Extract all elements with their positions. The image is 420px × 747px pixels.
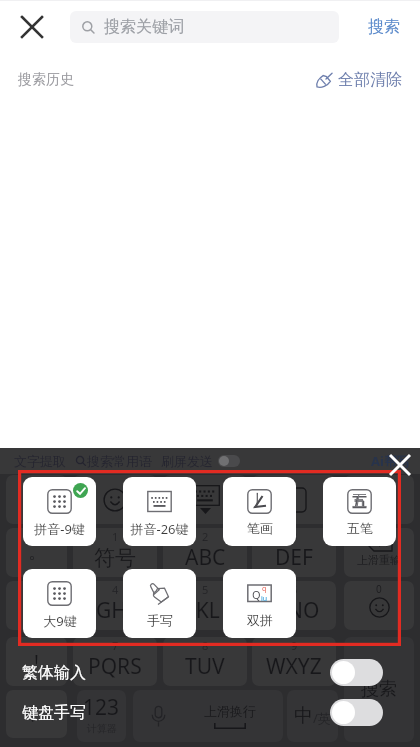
staticText: 搜索	[361, 678, 397, 701]
button[interactable]: ?	[6, 581, 67, 630]
staticText: 4	[112, 582, 119, 597]
button[interactable]: Keyboard tool	[163, 475, 247, 524]
button[interactable]: 中	[287, 690, 338, 742]
button[interactable]: 123	[77, 690, 126, 742]
staticText: 文字提取	[14, 453, 66, 469]
staticText: 搜索历史	[18, 71, 74, 89]
staticText: 计算器	[87, 722, 117, 735]
button[interactable]: Hide keyboard	[344, 475, 414, 524]
staticText: 2	[202, 529, 209, 544]
staticText: 中	[294, 704, 313, 728]
button[interactable]: 手写	[123, 569, 196, 638]
button[interactable]: 2	[163, 528, 247, 577]
button[interactable]: Close panel	[385, 450, 415, 480]
staticText: 123	[83, 693, 120, 722]
button[interactable]: Emoji	[344, 581, 414, 630]
staticText: 符号	[94, 545, 136, 571]
staticText: ABC	[185, 543, 226, 572]
staticText: TUV	[185, 652, 225, 681]
button[interactable]: 3	[252, 528, 336, 577]
staticText: 5	[202, 582, 209, 597]
staticText: 双拼	[247, 612, 273, 628]
button[interactable]: 6	[252, 581, 336, 630]
button[interactable]: 5	[163, 581, 247, 630]
button[interactable]: 9	[252, 637, 336, 686]
staticText: 搜索关键词	[104, 17, 184, 37]
button[interactable]: !	[6, 637, 67, 686]
button[interactable]: 键盘手写	[0, 698, 420, 727]
button[interactable]: 拼音-26键	[123, 477, 196, 546]
button[interactable]: 4	[73, 581, 157, 630]
staticText: Ai帮写	[371, 452, 410, 470]
button[interactable]: 。	[6, 528, 67, 577]
staticText: 上滑重输	[357, 553, 401, 567]
staticText: 7	[112, 638, 119, 653]
button[interactable]: 丿	[223, 477, 296, 546]
staticText: 搜索常用语	[87, 453, 152, 469]
button[interactable]: 7	[73, 637, 157, 686]
staticText: DEF	[275, 543, 313, 572]
button[interactable]: Backspace	[344, 528, 414, 577]
staticText: 。	[28, 541, 46, 564]
staticText: 拼音-26键	[130, 520, 189, 538]
button[interactable]: Q	[223, 569, 296, 638]
staticText: 键盘手写	[22, 703, 86, 723]
button[interactable]: Keyboard tool	[73, 475, 157, 524]
staticText: WXYZ	[266, 652, 322, 681]
button[interactable]: 搜索	[349, 0, 419, 54]
staticText: 搜索	[368, 17, 400, 37]
staticText: GHI	[96, 596, 134, 625]
button[interactable]: 繁体输入	[0, 658, 420, 687]
staticText: 3	[291, 529, 298, 544]
staticText: 0	[376, 582, 382, 596]
staticText: 全部清除	[338, 70, 402, 90]
staticText: PQRS	[88, 652, 142, 681]
button[interactable]: Close	[9, 0, 55, 54]
staticText: 6	[291, 582, 298, 597]
staticText: 1	[112, 529, 119, 544]
button[interactable]: Space	[133, 690, 283, 742]
button[interactable]: 五	[323, 477, 396, 546]
staticText: 手写	[147, 612, 173, 628]
button[interactable]: 搜索关键词	[70, 11, 339, 43]
staticText: 9	[291, 638, 298, 653]
staticText: !	[34, 649, 39, 674]
button[interactable]: 1	[73, 528, 157, 577]
button[interactable]: 全部清除	[314, 70, 402, 90]
staticText: 大9键	[43, 612, 77, 630]
button[interactable]: 8	[163, 637, 247, 686]
staticText: 繁体输入	[22, 663, 86, 683]
staticText: 上滑换行	[204, 703, 256, 719]
staticText: 五	[352, 492, 367, 511]
staticText: /英	[313, 709, 331, 727]
staticText: 8	[202, 638, 209, 653]
staticText: MNO	[268, 596, 320, 625]
staticText: 刷屏发送	[161, 453, 213, 469]
staticText: 、	[28, 703, 46, 726]
staticText: q	[262, 584, 267, 594]
staticText: JKL	[190, 596, 220, 625]
button[interactable]: Keyboard tool	[252, 475, 336, 524]
staticText: 笔画	[247, 520, 273, 536]
button[interactable]: 搜索	[344, 637, 414, 742]
staticText: 拼音-9键	[34, 520, 85, 538]
staticText: Q	[252, 587, 261, 602]
button[interactable]: 拼音-9键	[23, 477, 96, 546]
button[interactable]: ，	[6, 475, 67, 524]
button[interactable]: 、	[6, 690, 67, 738]
staticText: iu	[261, 594, 268, 604]
button[interactable]: 大9键	[23, 569, 96, 638]
staticText: 五笔	[347, 520, 373, 536]
staticText: 丿	[252, 491, 268, 511]
